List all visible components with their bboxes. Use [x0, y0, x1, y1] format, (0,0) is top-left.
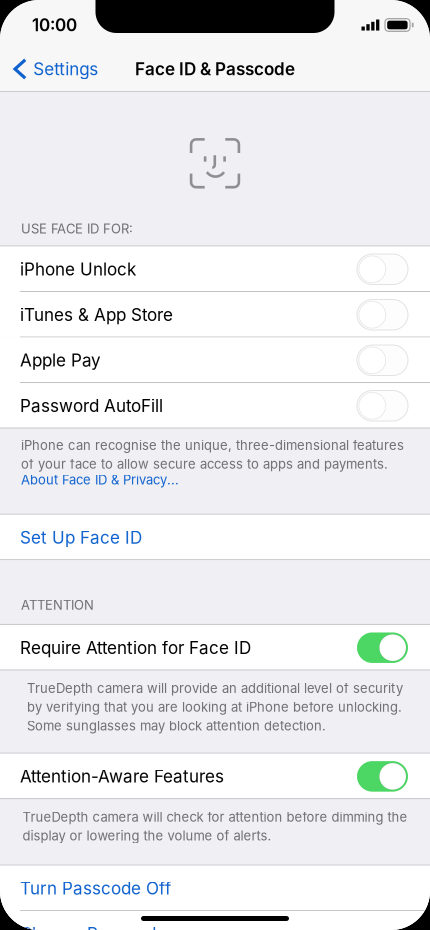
- button[interactable]: Change Passcode: [0, 911, 430, 930]
- staticText: Turn Passcode Off: [20, 878, 171, 899]
- button[interactable]: Password AutoFill: [0, 383, 430, 428]
- button[interactable]: iPhone Unlock: [0, 246, 430, 292]
- button[interactable]: Attention-Aware Features: [0, 754, 430, 799]
- staticText: Password AutoFill: [20, 395, 163, 416]
- staticText: Settings: [33, 59, 98, 79]
- staticText: Face ID & Passcode: [135, 59, 295, 79]
- button[interactable]: About Face ID & Privacy...: [21, 472, 409, 488]
- staticText: Set Up Face ID: [20, 527, 142, 548]
- button[interactable]: iTunes & App Store: [0, 292, 430, 337]
- staticText: 10:00: [32, 15, 77, 35]
- button[interactable]: Apple Pay: [0, 337, 430, 383]
- staticText: Apple Pay: [20, 350, 101, 371]
- staticText: USE FACE ID FOR:: [21, 221, 133, 236]
- staticText: About Face ID & Privacy...: [21, 472, 179, 488]
- button[interactable]: Settings: [0, 47, 108, 91]
- staticText: Attention-Aware Features: [20, 766, 224, 787]
- button[interactable]: Require Attention for Face ID: [0, 625, 430, 670]
- staticText: iPhone can recognise the unique, three-d…: [21, 437, 404, 472]
- staticText: Require Attention for Face ID: [20, 637, 251, 658]
- staticText: Change Passcode: [20, 924, 166, 930]
- staticText: iTunes & App Store: [20, 304, 173, 325]
- staticText: TrueDepth camera will check for attentio…: [22, 809, 407, 844]
- staticText: TrueDepth camera will provide an additio…: [27, 680, 403, 734]
- staticText: ATTENTION: [21, 597, 94, 613]
- staticText: iPhone Unlock: [20, 259, 136, 280]
- button[interactable]: Set Up Face ID: [0, 515, 430, 560]
- button[interactable]: Turn Passcode Off: [0, 866, 430, 911]
